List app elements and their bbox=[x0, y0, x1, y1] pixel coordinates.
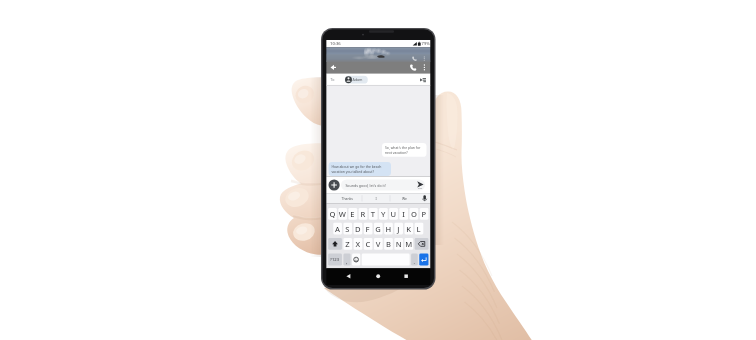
button[interactable]: Hand holding phone showing a messaging c… bbox=[0, 0, 756, 340]
